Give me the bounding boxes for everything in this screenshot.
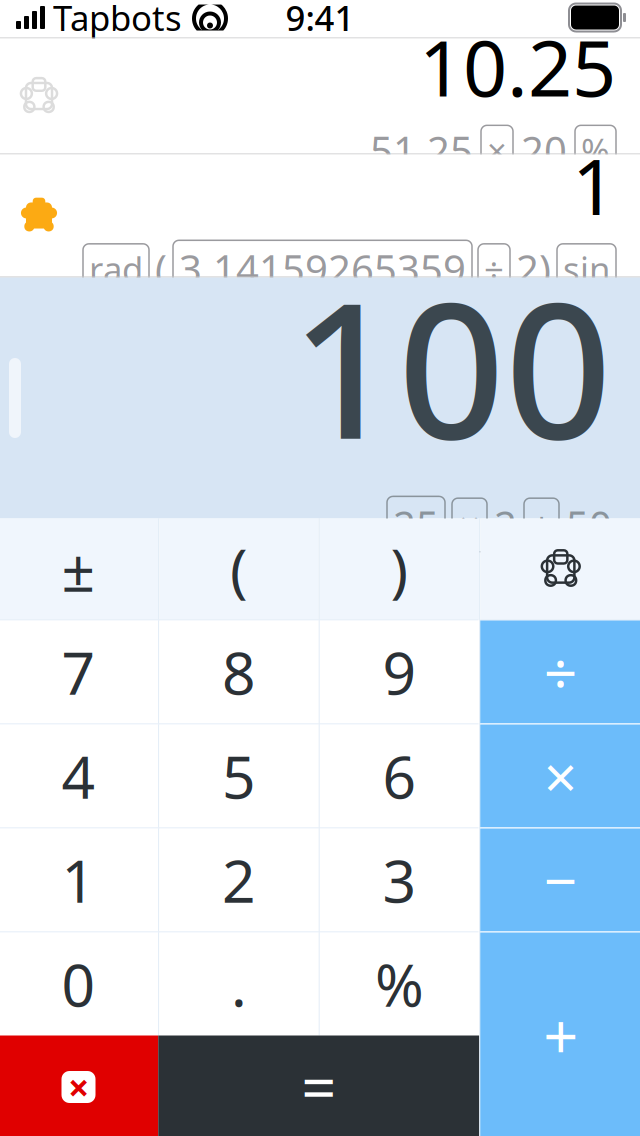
staticText: + [543, 995, 578, 1076]
staticText: 100 [291, 242, 612, 490]
staticText: × [544, 737, 578, 815]
staticText: 4 [61, 737, 95, 815]
button[interactable]: 2 [159, 828, 319, 931]
staticText: 2 [222, 841, 256, 919]
staticText: sin [563, 246, 610, 292]
button[interactable]: ( [159, 518, 319, 619]
staticText: ÷ [544, 633, 578, 711]
staticText: 5 [222, 737, 256, 815]
staticText: 51.25 [370, 124, 473, 177]
staticText: % [581, 127, 610, 173]
staticText: 0 [61, 945, 95, 1023]
button[interactable]: 8 [159, 620, 319, 723]
staticText: . [231, 945, 247, 1023]
button[interactable]: 1 [0, 828, 158, 931]
staticText: 1 [572, 134, 616, 236]
staticText: = [301, 1046, 336, 1128]
button[interactable]: − [480, 828, 640, 931]
button[interactable]: . [159, 932, 319, 1035]
staticText: ( [155, 242, 167, 295]
button[interactable]: 7 [0, 620, 158, 723]
staticText: 2 [494, 498, 517, 551]
button[interactable]: + [480, 932, 640, 1136]
staticText: 7 [61, 633, 95, 711]
button[interactable]: ± [0, 518, 158, 619]
staticText: 3.14159265359 [179, 242, 466, 295]
button[interactable]: Favorites [480, 518, 640, 619]
staticText: ± [61, 530, 95, 608]
staticText: 6 [382, 737, 416, 815]
staticText: − [544, 841, 578, 919]
staticText: 2) [516, 242, 551, 295]
staticText: 50 [566, 498, 612, 551]
staticText: 1 [61, 841, 95, 919]
staticText: 25 [393, 498, 439, 551]
button[interactable]: 0 [0, 932, 158, 1035]
button[interactable]: 1 [0, 154, 640, 276]
button[interactable]: ÷ [480, 620, 640, 723]
staticText: 20 [521, 124, 567, 177]
staticText: Tapbots [53, 0, 182, 40]
button[interactable]: × [480, 724, 640, 827]
staticText: × [487, 127, 507, 173]
staticText: × [68, 1062, 89, 1112]
staticText: 3 [382, 841, 416, 919]
button[interactable]: 5 [159, 724, 319, 827]
staticText: % [375, 945, 424, 1023]
button[interactable]: = [158, 1035, 479, 1136]
button[interactable]: 6 [320, 724, 479, 827]
button[interactable]: Delete [0, 1035, 158, 1136]
button[interactable]: 3 [320, 828, 479, 931]
staticText: ÷ [484, 246, 504, 292]
staticText: ( [230, 530, 248, 608]
staticText: + [531, 500, 552, 550]
button[interactable]: 10.25 [0, 38, 640, 153]
staticText: 9:41 [285, 0, 354, 40]
staticText: 8 [222, 633, 256, 711]
staticText: 9 [382, 633, 416, 711]
button[interactable]: 9 [320, 620, 479, 723]
staticText: × [459, 500, 480, 550]
button[interactable]: ) [320, 518, 479, 619]
button[interactable]: % [320, 932, 479, 1035]
staticText: ) [390, 530, 408, 608]
staticText: rad [89, 246, 143, 292]
staticText: 10.25 [419, 15, 616, 118]
button[interactable]: 4 [0, 724, 158, 827]
